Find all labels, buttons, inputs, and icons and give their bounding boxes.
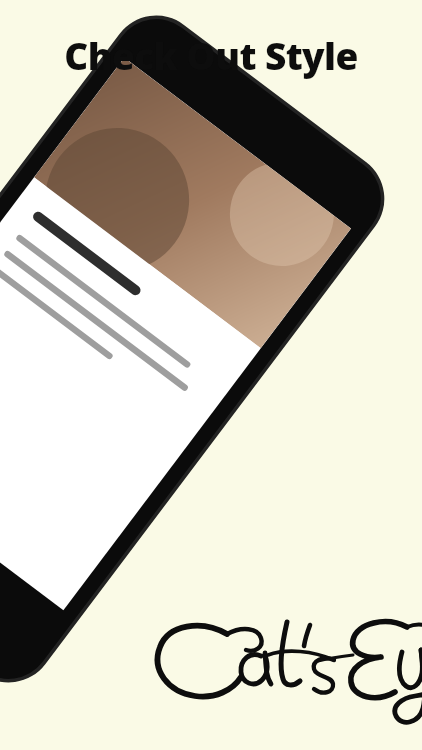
button[interactable]: Check Out Style [64, 30, 358, 80]
other: Cat's Eye logo [0, 0, 422, 750]
other: App preview on phone [0, 0, 422, 750]
